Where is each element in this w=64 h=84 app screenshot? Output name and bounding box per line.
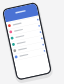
button[interactable]: Phone mockup xyxy=(0,0,64,84)
